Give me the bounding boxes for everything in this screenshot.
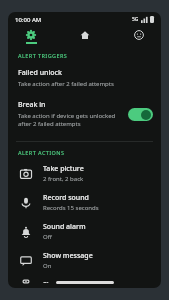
staticText: Records 15 seconds <box>43 204 99 212</box>
staticText: ALERT TRIGGERS <box>18 52 68 59</box>
button[interactable]: Record sound <box>8 188 161 217</box>
button[interactable]: Break in toggle <box>128 108 153 121</box>
button[interactable]: Break in <box>8 94 161 134</box>
staticText: Take action if device gets unlocked afte… <box>18 112 122 128</box>
staticText: Take picture <box>43 164 84 174</box>
staticText: 2 front, 2 back <box>43 175 84 183</box>
staticText: Take action after 2 failed attempts <box>18 80 114 88</box>
staticText: Show fake home screen <box>43 280 123 283</box>
button[interactable]: Home <box>73 27 97 47</box>
button[interactable]: Take picture <box>8 159 161 188</box>
staticText: On <box>43 262 52 270</box>
button[interactable]: Show message <box>8 246 161 275</box>
button[interactable]: Account <box>127 27 151 47</box>
staticText: 5G <box>132 16 139 23</box>
button[interactable]: Settings <box>19 27 43 47</box>
staticText: Off <box>43 233 52 241</box>
button[interactable]: Show fake home screen <box>8 275 161 288</box>
button[interactable]: Failed unlock <box>8 62 161 94</box>
staticText: Failed unlock <box>18 68 62 78</box>
staticText: Sound alarm <box>43 222 86 232</box>
staticText: Show message <box>43 251 93 261</box>
staticText: Break in <box>18 100 46 110</box>
staticText: Record sound <box>43 193 89 203</box>
staticText: 10:00 AM <box>15 16 42 24</box>
staticText: ALERT ACTIONS <box>18 149 65 156</box>
button[interactable]: Sound alarm <box>8 217 161 246</box>
